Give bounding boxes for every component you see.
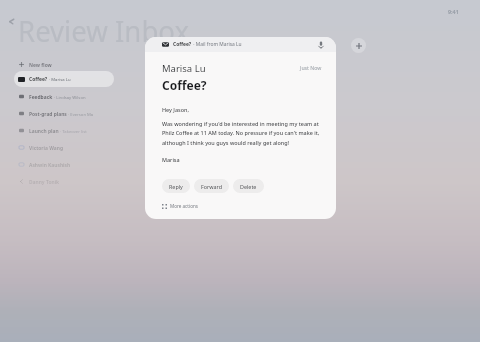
staticText: Marisa Lu (162, 62, 206, 75)
button[interactable]: Post-grad plans (14, 107, 118, 122)
staticText: · Marisa Lu (48, 77, 71, 83)
staticText: Launch plan (29, 128, 59, 135)
button[interactable]: Coffee? (14, 71, 114, 87)
staticText: Reply (169, 183, 183, 190)
button[interactable]: Coffee? (145, 37, 336, 52)
staticText: · Takeover list (59, 129, 87, 135)
button[interactable]: Back (5, 15, 17, 27)
staticText: New flow (29, 62, 52, 69)
staticText: · Mail from Marisa Lu (192, 41, 242, 48)
button[interactable]: Ashwin Kaushish (14, 158, 118, 173)
button[interactable]: Voice (316, 40, 326, 50)
button[interactable]: New (351, 38, 366, 53)
staticText: Philz Coffee at 11 AM today. No pressure… (162, 129, 332, 136)
staticText: Post-grad plans (29, 111, 67, 118)
button[interactable]: Reply (162, 179, 190, 193)
button[interactable]: Victoria Wang (14, 141, 118, 156)
staticText: Just Now (300, 64, 322, 71)
button[interactable]: New flow (14, 58, 118, 73)
staticText: · Everson Ma (67, 112, 94, 118)
staticText: 9:41 (448, 8, 459, 15)
staticText: Victoria Wang (29, 145, 64, 152)
staticText: Was wondering if you'd be interested in … (162, 120, 332, 127)
button[interactable]: Forward (194, 179, 229, 193)
staticText: · Lindsay Wilson (53, 95, 86, 101)
staticText: Forward (201, 183, 222, 190)
button[interactable]: Delete (233, 179, 264, 193)
staticText: although I think you guys would really g… (162, 139, 332, 146)
staticText: Danny Tonik (29, 179, 60, 186)
staticText: Coffee? (29, 76, 48, 83)
staticText: More actions (170, 203, 198, 209)
staticText: Marisa (162, 156, 180, 163)
staticText: Review Inbox (18, 11, 190, 50)
button[interactable]: Launch plan (14, 124, 118, 139)
staticText: Feedback (29, 94, 53, 101)
staticText: Hey Jason, (162, 106, 189, 113)
button[interactable]: Danny Tonik (14, 175, 118, 190)
staticText: Coffee? (173, 41, 192, 48)
button[interactable]: Feedback (14, 90, 118, 105)
staticText: Ashwin Kaushish (29, 162, 71, 169)
staticText: Delete (240, 183, 257, 190)
staticText: Coffee? (162, 77, 207, 93)
button[interactable]: More actions (162, 203, 198, 209)
